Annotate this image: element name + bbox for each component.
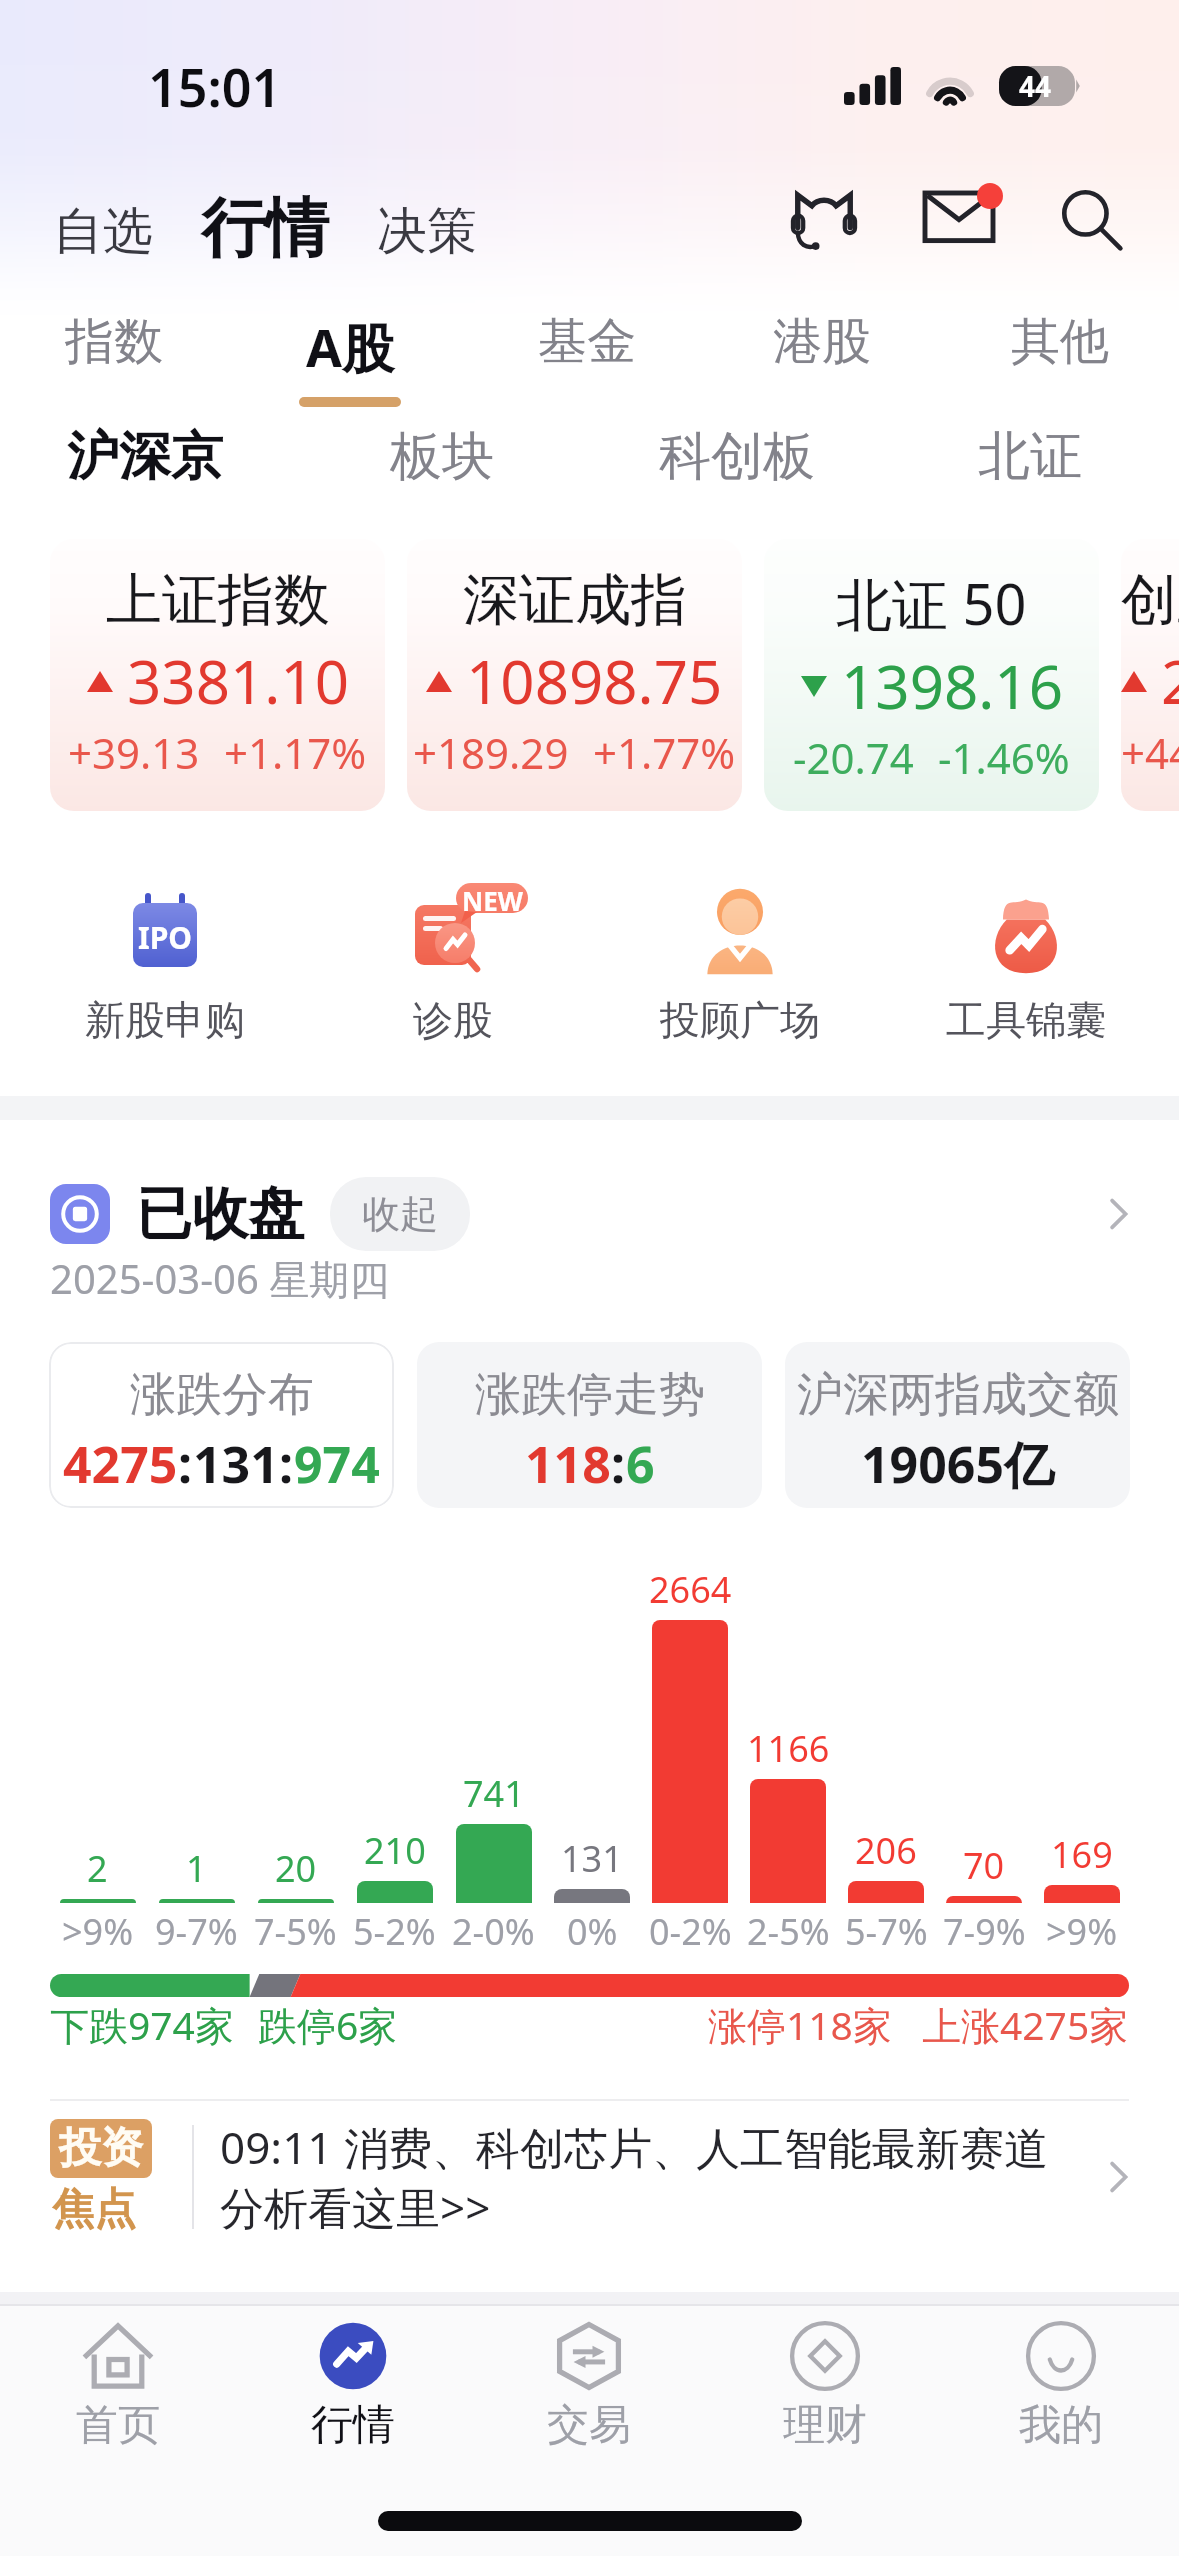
staticText: 0-2% — [649, 1907, 732, 1956]
button[interactable]: 投顾广场 — [620, 808, 860, 1043]
button[interactable]: 北证 50 — [764, 539, 1099, 811]
button[interactable]: 投资 — [50, 2117, 1139, 2237]
button[interactable]: 首页 — [0, 2321, 235, 2452]
button[interactable]: 决策 — [369, 190, 485, 273]
button[interactable]: 创业板指 — [1121, 539, 1179, 811]
staticText: 涨停118家 — [708, 1998, 892, 2051]
staticText: 工具锦囊 — [946, 995, 1106, 1043]
button[interactable]: 理财 — [707, 2321, 943, 2452]
button[interactable]: 上证指数 — [50, 539, 385, 811]
staticText: 1398.16 — [841, 645, 1063, 727]
staticText: >9% — [62, 1907, 134, 1956]
staticText: 收起 — [362, 1190, 438, 1238]
button[interactable]: Messages — [907, 165, 1017, 275]
staticText: 2-0% — [452, 1907, 535, 1956]
staticText: 诊股 — [413, 995, 493, 1043]
staticText: 15:01 — [148, 51, 282, 122]
button[interactable]: 已收盘 — [50, 1177, 1139, 1251]
button[interactable]: 工具锦囊 — [906, 808, 1146, 1043]
button[interactable]: 我的 — [943, 2321, 1179, 2452]
staticText: 涨跌分布 — [130, 1366, 314, 1424]
staticText: 自选 — [53, 200, 153, 263]
staticText: +1.77% — [593, 724, 736, 781]
button[interactable]: 行情 — [193, 184, 337, 273]
staticText: 4275 — [63, 1430, 178, 1498]
staticText: -1.46% — [938, 729, 1070, 786]
staticText: 10898.75 — [466, 640, 723, 722]
button[interactable]: Search — [1037, 165, 1147, 275]
button[interactable]: 其他 — [980, 280, 1140, 416]
staticText: 港股 — [773, 311, 871, 373]
staticText: A股 — [306, 311, 394, 382]
staticText: 沪深京 — [67, 424, 223, 490]
staticText: 跌停6家 — [258, 1998, 398, 2051]
staticText: 科创板 — [659, 424, 815, 490]
button[interactable]: 港股 — [742, 280, 902, 416]
staticText: 创业板指 — [1121, 565, 1179, 636]
staticText: 5-2% — [353, 1907, 436, 1956]
staticText: 7-5% — [254, 1907, 337, 1956]
staticText: 决策 — [377, 200, 477, 263]
staticText: 交易 — [547, 2399, 631, 2452]
button[interactable]: 科创板 — [627, 416, 847, 498]
staticText: 210 — [364, 1826, 426, 1875]
staticText: : — [279, 1430, 294, 1498]
staticText: 9-7% — [155, 1907, 238, 1956]
staticText: IPO — [138, 917, 193, 958]
staticText: 理财 — [783, 2399, 867, 2452]
staticText: 首页 — [76, 2399, 160, 2452]
button[interactable]: 沪深京 — [35, 416, 255, 498]
button[interactable]: IPO — [45, 808, 285, 1043]
staticText: 20 — [275, 1844, 317, 1893]
staticText: >9% — [1046, 1907, 1118, 1956]
button[interactable]: Customer service — [769, 165, 879, 275]
staticText: 0% — [567, 1907, 618, 1956]
staticText: 5-7% — [845, 1907, 928, 1956]
button[interactable]: 板块 — [332, 416, 552, 498]
button[interactable]: 涨跌停走势 — [417, 1342, 762, 1508]
button[interactable]: 深证成指 — [407, 539, 742, 811]
staticText: 2 — [87, 1844, 108, 1893]
staticText: 6 — [626, 1430, 655, 1498]
staticText: 下跌974家 — [50, 1998, 234, 2051]
staticText: 深证成指 — [463, 565, 687, 636]
staticText: 我的 — [1019, 2399, 1103, 2452]
staticText: 131 — [561, 1834, 623, 1883]
staticText: 2664 — [649, 1565, 732, 1614]
button[interactable]: 涨跌分布 — [49, 1342, 394, 1508]
staticText: -20.74 — [793, 729, 914, 786]
staticText: 上证指数 — [106, 565, 330, 636]
button[interactable]: A股 — [270, 280, 430, 416]
staticText: 基金 — [538, 311, 636, 373]
staticText: 3381.10 — [127, 640, 349, 722]
staticText: 分析看这里>> — [220, 2177, 491, 2237]
staticText: 741 — [463, 1769, 525, 1818]
button[interactable]: 行情 — [235, 2321, 471, 2452]
staticText: 其他 — [1011, 311, 1109, 373]
staticText: 118 — [525, 1430, 611, 1498]
button[interactable]: 北证 — [920, 416, 1140, 498]
staticText: 70 — [963, 1841, 1005, 1890]
staticText: 已收盘 — [136, 1179, 304, 1250]
button[interactable]: 交易 — [471, 2321, 707, 2452]
staticText: 板块 — [390, 424, 494, 490]
staticText: : — [178, 1430, 193, 1498]
staticText: 2-5% — [747, 1907, 830, 1956]
button[interactable]: 指数 — [34, 280, 194, 416]
button[interactable]: 自选 — [45, 190, 161, 273]
staticText: +1.17% — [224, 724, 367, 781]
button[interactable]: 基金 — [507, 280, 667, 416]
staticText: 指数 — [65, 311, 163, 373]
staticText: 沪深两指成交额 — [797, 1366, 1119, 1424]
staticText: 169 — [1051, 1830, 1113, 1879]
staticText: 投顾广场 — [660, 995, 820, 1043]
button[interactable]: NEW — [333, 808, 573, 1043]
staticText: NEW — [462, 883, 523, 913]
button[interactable]: 沪深两指成交额 — [785, 1342, 1130, 1508]
staticText: 北证 — [978, 424, 1082, 490]
staticText: +44.96 — [1121, 724, 1179, 781]
button[interactable]: 收起 — [330, 1177, 470, 1251]
staticText: 19065亿 — [861, 1430, 1054, 1498]
staticText: : — [611, 1430, 626, 1498]
staticText: 焦点 — [52, 2183, 136, 2236]
